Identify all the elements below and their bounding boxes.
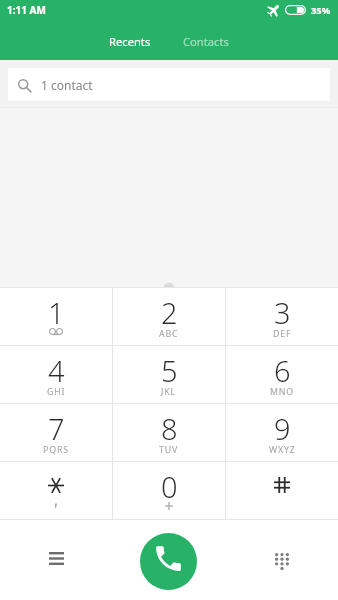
button[interactable]: 3 bbox=[226, 288, 338, 345]
staticText: MNO bbox=[270, 386, 295, 398]
staticText: 8 bbox=[161, 409, 178, 448]
button[interactable]: 2 bbox=[113, 288, 225, 345]
staticText: JKL bbox=[161, 386, 177, 398]
staticText: 3 bbox=[274, 293, 291, 332]
staticText: 9 bbox=[274, 409, 291, 448]
staticText: PQRS bbox=[43, 444, 69, 456]
button[interactable]: Call bbox=[140, 533, 197, 590]
staticText: DEF bbox=[273, 328, 292, 340]
button[interactable]: Call log menu bbox=[0, 520, 112, 600]
staticText: Recents bbox=[109, 34, 151, 49]
button[interactable]: Recents bbox=[93, 25, 167, 58]
staticText: 4 bbox=[48, 351, 65, 390]
staticText: ABC bbox=[159, 328, 179, 340]
staticText: 7 bbox=[48, 409, 65, 448]
button[interactable]: Contacts bbox=[167, 25, 245, 58]
staticText: 1 contact bbox=[41, 77, 93, 93]
button[interactable]: 1 bbox=[0, 288, 112, 345]
staticText: 0 bbox=[161, 467, 178, 506]
button[interactable]: 5 bbox=[113, 346, 225, 403]
staticText: 5 bbox=[161, 351, 178, 390]
button[interactable]: 9 bbox=[226, 404, 338, 461]
button[interactable]: 8 bbox=[113, 404, 225, 461]
button[interactable] bbox=[226, 462, 338, 519]
staticText: 2 bbox=[161, 293, 178, 332]
staticText: 1 bbox=[48, 293, 65, 332]
button[interactable]: 7 bbox=[0, 404, 112, 461]
staticText: TUV bbox=[159, 444, 179, 456]
button[interactable]: 0 bbox=[113, 462, 225, 519]
staticText: 1:11 AM bbox=[7, 3, 46, 17]
button[interactable]: Dialpad bbox=[225, 520, 338, 600]
staticText: 35% bbox=[311, 4, 331, 17]
button[interactable]: 6 bbox=[226, 346, 338, 403]
staticText: Contacts bbox=[183, 34, 229, 49]
staticText: WXYZ bbox=[269, 444, 296, 456]
button[interactable]: 4 bbox=[0, 346, 112, 403]
button[interactable]: 1 contact bbox=[8, 68, 330, 101]
staticText: GHI bbox=[47, 386, 66, 398]
staticText: 6 bbox=[274, 351, 291, 390]
button[interactable] bbox=[0, 462, 112, 519]
